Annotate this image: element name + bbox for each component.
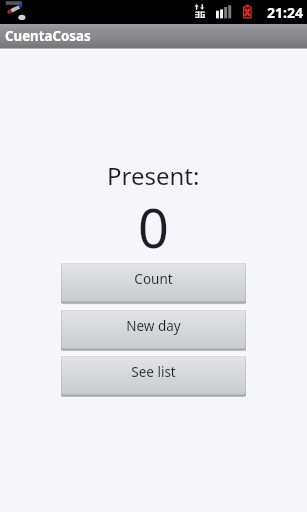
other: 3G data [194, 4, 206, 19]
staticText: 0 [138, 190, 169, 264]
button[interactable]: See list [61, 355, 246, 397]
other: Medication reminder [0, 0, 28, 22]
other: Battery [243, 4, 253, 20]
other: Mobile signal [216, 5, 232, 19]
staticText: Present: [107, 159, 200, 192]
staticText: See list [131, 363, 176, 381]
staticText: 21:24 [267, 3, 303, 22]
button[interactable]: New day [61, 309, 246, 351]
staticText: CuentaCosas [5, 27, 91, 45]
staticText: Count [134, 270, 173, 288]
staticText: New day [126, 317, 181, 335]
button[interactable]: Count [61, 262, 246, 304]
